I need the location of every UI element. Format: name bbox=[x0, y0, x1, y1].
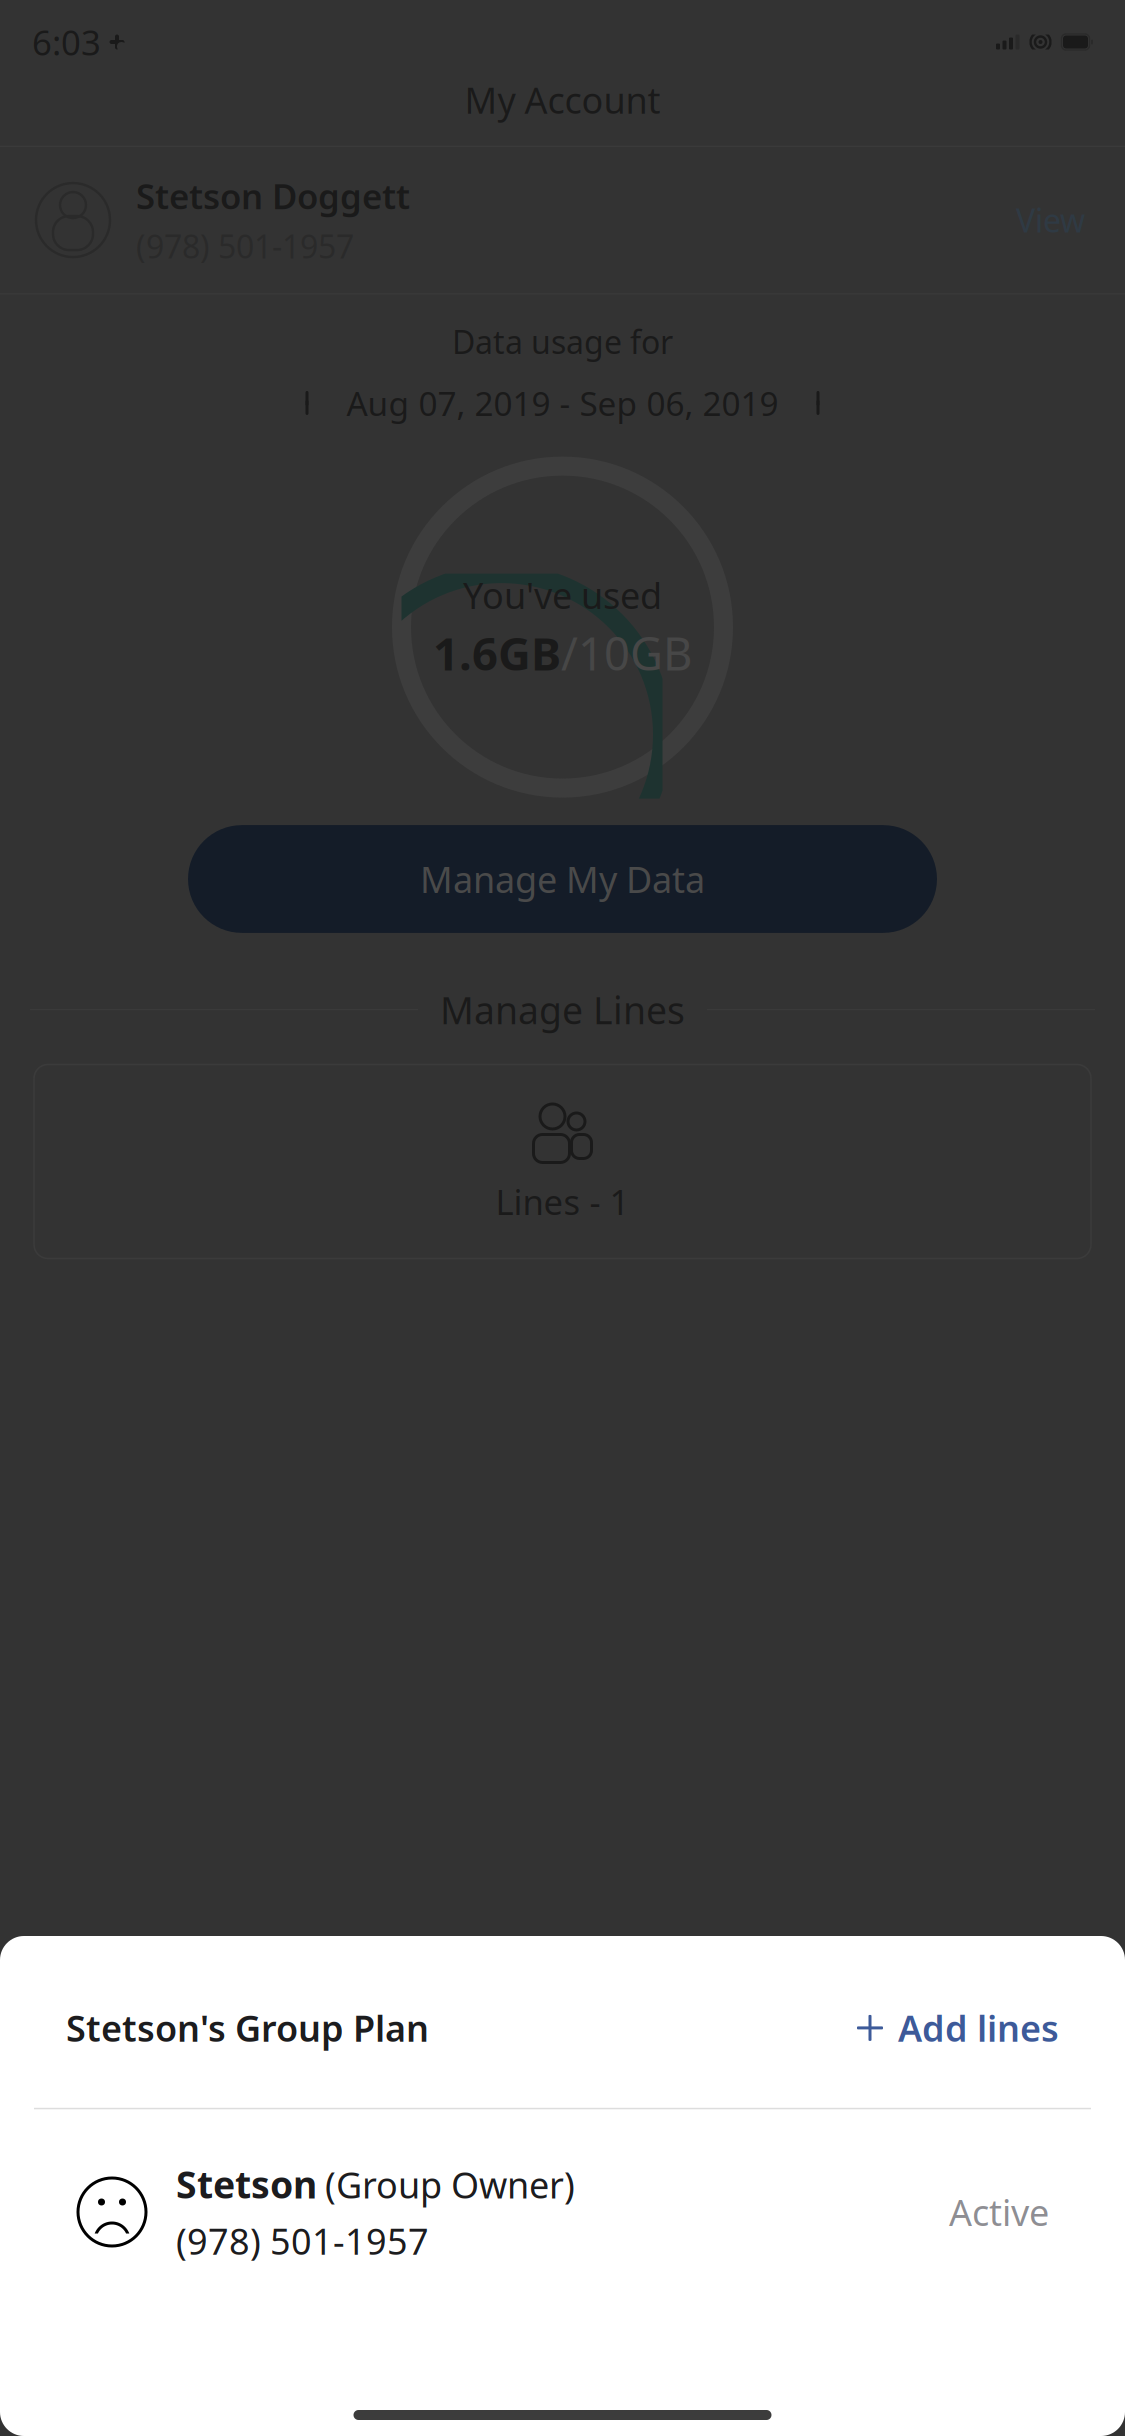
staticText: Stetson bbox=[176, 2159, 317, 2209]
staticText: (Group Owner) bbox=[325, 2161, 575, 2208]
staticText: My Account bbox=[464, 76, 660, 124]
button[interactable]: Add lines bbox=[856, 1994, 1059, 2062]
staticText: Lines - 1 bbox=[495, 1178, 629, 1224]
staticText: View bbox=[1016, 199, 1085, 241]
staticText: Stetson Doggett bbox=[136, 173, 410, 219]
staticText: (978) 501-1957 bbox=[176, 2217, 429, 2265]
button[interactable]: Next period bbox=[796, 382, 834, 424]
button[interactable]: Previous period bbox=[290, 382, 328, 424]
staticText: Add lines bbox=[898, 2004, 1059, 2052]
staticText: Stetson's Group Plan bbox=[66, 2004, 429, 2052]
staticText: You've used bbox=[463, 571, 662, 619]
button[interactable]: Stetson bbox=[0, 2133, 1125, 2291]
staticText: Data usage for bbox=[452, 320, 673, 363]
staticText: Manage Lines bbox=[440, 985, 685, 1034]
button[interactable]: View bbox=[1010, 187, 1091, 253]
staticText: 1.6GB bbox=[433, 623, 561, 683]
staticText: Manage My Data bbox=[420, 855, 705, 903]
button[interactable]: Manage My Data bbox=[188, 825, 937, 933]
staticText: Aug 07, 2019 - Sep 06, 2019 bbox=[346, 381, 778, 425]
staticText: Active bbox=[949, 2188, 1049, 2236]
staticText: /10GB bbox=[561, 623, 692, 683]
staticText: 6:03 bbox=[32, 19, 101, 65]
